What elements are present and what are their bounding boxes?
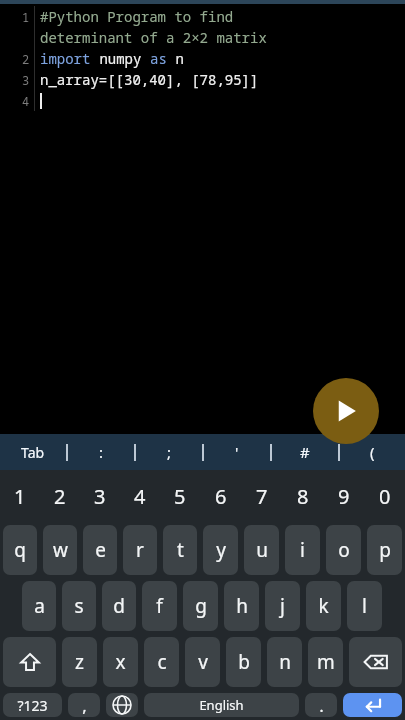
staticText: l — [362, 593, 367, 619]
button[interactable]: b — [226, 637, 261, 687]
staticText: y — [216, 537, 226, 563]
staticText: w — [53, 537, 68, 563]
button[interactable]: c — [144, 637, 179, 687]
button[interactable]: r — [123, 525, 157, 575]
button[interactable]: y — [203, 525, 238, 575]
staticText: ; — [167, 442, 172, 462]
staticText: q — [14, 537, 26, 563]
button[interactable]: 7 — [241, 470, 282, 522]
button[interactable]: . — [305, 693, 337, 717]
staticText: a — [34, 593, 45, 619]
button[interactable]: h — [224, 581, 259, 631]
button[interactable]: 8 — [282, 470, 323, 522]
button[interactable]: Shift — [3, 637, 56, 687]
staticText: o — [338, 537, 350, 563]
button[interactable]: u — [244, 525, 279, 575]
staticText: k — [318, 593, 329, 619]
button[interactable]: 3 — [80, 470, 120, 522]
staticText: . — [319, 694, 324, 717]
button[interactable]: 9 — [323, 470, 364, 522]
staticText: e — [95, 537, 106, 563]
button[interactable]: ' — [204, 434, 270, 470]
staticText: i — [300, 537, 305, 563]
staticText: u — [256, 537, 268, 563]
staticText: 4 — [22, 93, 30, 109]
button[interactable]: v — [185, 637, 220, 687]
staticText: d — [113, 593, 125, 619]
staticText: numpy — [91, 49, 150, 68]
staticText: z — [75, 649, 84, 675]
button[interactable]: Run — [313, 378, 379, 444]
button[interactable]: : — [68, 434, 134, 470]
button[interactable]: t — [163, 525, 197, 575]
button[interactable]: Backspace — [349, 637, 402, 687]
button[interactable]: , — [68, 693, 100, 717]
button[interactable]: k — [306, 581, 341, 631]
button[interactable]: 5 — [160, 470, 200, 522]
staticText: n_array=[[30,40], [78,95]] — [40, 70, 259, 89]
button[interactable]: l — [347, 581, 382, 631]
staticText: 0 — [379, 483, 391, 510]
staticText: 3 — [22, 72, 30, 88]
staticText: ' — [235, 442, 239, 462]
button[interactable]: ( — [340, 434, 405, 470]
staticText: m — [317, 649, 335, 675]
staticText: , — [82, 694, 87, 717]
staticText: 3 — [94, 483, 106, 510]
button[interactable]: f — [142, 581, 177, 631]
staticText: g — [195, 593, 207, 619]
button[interactable]: g — [183, 581, 218, 631]
button[interactable]: w — [43, 525, 77, 575]
staticText: as — [150, 49, 167, 68]
button[interactable]: i — [285, 525, 320, 575]
staticText: ?123 — [17, 696, 48, 715]
button[interactable]: # — [272, 434, 338, 470]
staticText: 2 — [54, 483, 66, 510]
staticText: English — [199, 696, 244, 714]
button[interactable]: z — [62, 637, 97, 687]
button[interactable]: Enter — [343, 693, 402, 717]
button[interactable]: 1 — [0, 470, 40, 522]
button[interactable]: n — [267, 637, 302, 687]
staticText: c — [157, 649, 167, 675]
button[interactable]: d — [102, 581, 136, 631]
button[interactable]: j — [265, 581, 300, 631]
button[interactable]: 2 — [40, 470, 80, 522]
staticText: f — [156, 593, 163, 619]
staticText: import — [40, 49, 91, 68]
button[interactable]: a — [22, 581, 56, 631]
staticText: t — [177, 537, 184, 563]
staticText: s — [74, 593, 84, 619]
staticText: b — [238, 649, 250, 675]
staticText: 2 — [22, 51, 30, 67]
staticText: 9 — [338, 483, 350, 510]
button[interactable]: s — [62, 581, 96, 631]
button[interactable]: p — [367, 525, 402, 575]
staticText: 7 — [256, 483, 268, 510]
staticText: h — [236, 593, 248, 619]
staticText: 8 — [297, 483, 309, 510]
staticText: 4 — [134, 483, 146, 510]
button[interactable]: m — [308, 637, 343, 687]
staticText: r — [136, 537, 144, 563]
button[interactable]: 6 — [200, 470, 241, 522]
button[interactable]: ; — [136, 434, 202, 470]
button[interactable]: x — [103, 637, 138, 687]
staticText: determinant of a 2×2 matrix — [40, 28, 267, 47]
button[interactable]: e — [83, 525, 117, 575]
button[interactable]: 0 — [364, 470, 405, 522]
button[interactable]: Language — [106, 693, 138, 717]
button[interactable]: Tab — [0, 434, 66, 470]
button[interactable]: q — [3, 525, 37, 575]
staticText: 6 — [215, 483, 227, 510]
button[interactable]: o — [326, 525, 361, 575]
button[interactable]: English — [144, 693, 299, 717]
staticText: n — [167, 49, 184, 68]
button[interactable]: ?123 — [3, 693, 62, 717]
staticText: p — [379, 537, 391, 563]
staticText: # — [300, 442, 310, 462]
staticText: 1 — [22, 9, 30, 25]
button[interactable]: 4 — [120, 470, 160, 522]
staticText: ( — [370, 442, 375, 462]
staticText: 5 — [174, 483, 186, 510]
